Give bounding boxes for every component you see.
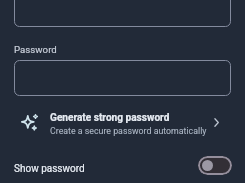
button[interactable]: Show password (198, 156, 232, 175)
staticText: Password (14, 44, 57, 55)
button[interactable]: Generate strong password (0, 106, 245, 141)
staticText: Create a secure password automatically (50, 126, 207, 136)
other: Open (214, 118, 219, 127)
staticText: Show password (14, 163, 85, 175)
staticText: Generate strong password (50, 112, 170, 124)
button[interactable]: Show password (0, 149, 245, 183)
